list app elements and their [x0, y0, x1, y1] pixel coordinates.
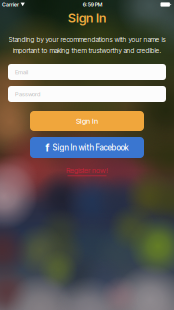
staticText: Sign In	[76, 117, 98, 125]
staticText: Password	[15, 90, 40, 98]
staticText: Carrier	[2, 1, 19, 8]
button[interactable]: Sign In	[30, 111, 144, 131]
button[interactable]: Register now!	[66, 166, 108, 176]
staticText: Register now!	[66, 166, 108, 175]
staticText: Sign In	[68, 10, 106, 26]
staticText: important to making them trustworthy and…	[12, 46, 161, 55]
staticText: Email	[15, 68, 28, 76]
staticText: f	[45, 141, 49, 154]
button[interactable]: f	[30, 137, 144, 158]
staticText: Standing by your recommendations with yo…	[8, 35, 165, 44]
staticText: 6:59 PM	[83, 1, 103, 8]
staticText: Sign In with Facebook	[52, 143, 128, 152]
